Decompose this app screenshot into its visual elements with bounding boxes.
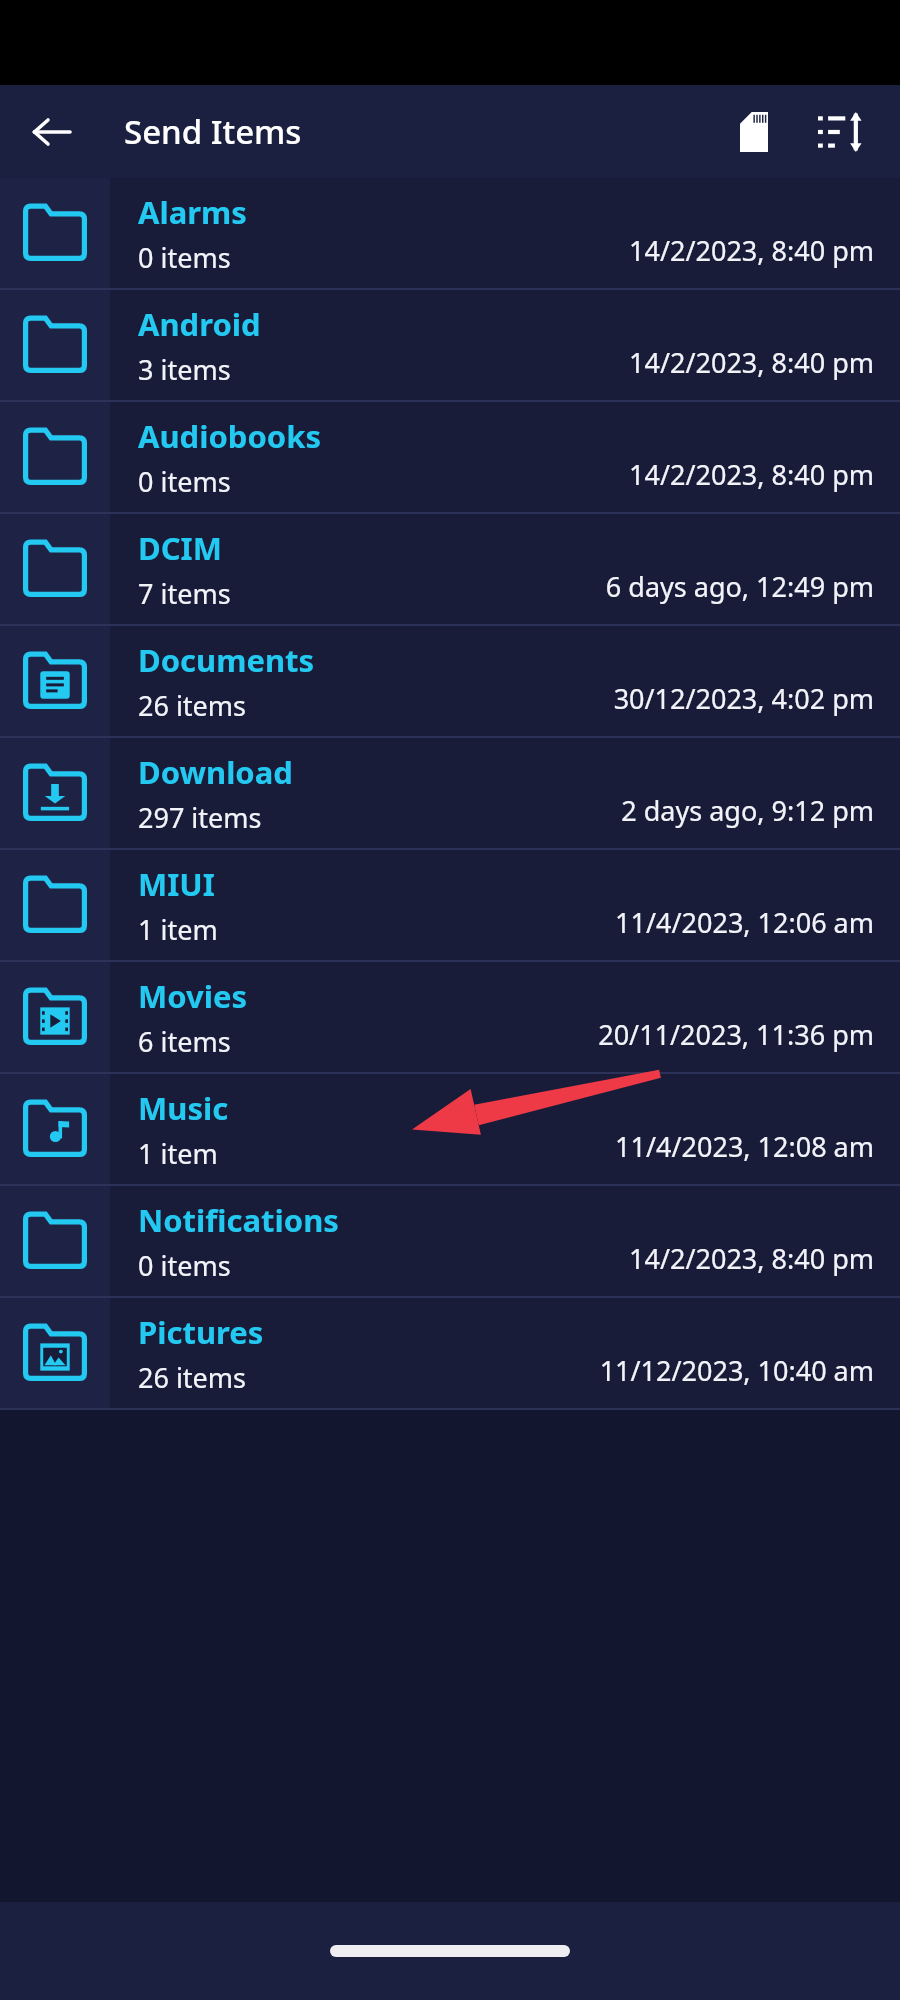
button[interactable]: Movies [0,962,900,1072]
staticText: Alarms [138,191,247,233]
staticText: Documents [138,639,315,681]
button[interactable]: Documents [0,626,900,736]
staticText: 0 items [138,239,231,276]
staticText: 7 items [138,575,231,612]
staticText: MIUI [138,863,215,905]
staticText: Notifications [138,1199,339,1241]
button[interactable]: DCIM [0,514,900,624]
button[interactable]: Android [0,290,900,400]
staticText: 14/2/2023, 8:40 pm [629,232,874,269]
staticText: Audiobooks [138,415,321,457]
staticText: 26 items [138,1359,247,1396]
button[interactable]: Music [0,1074,900,1184]
staticText: 0 items [138,463,231,500]
staticText: Download [138,751,293,793]
staticText: 3 items [138,351,231,388]
staticText: 1 item [138,911,218,948]
staticText: 6 days ago, 12:49 pm [605,568,874,605]
staticText: 2 days ago, 9:12 pm [621,792,874,829]
staticText: 0 items [138,1247,231,1284]
staticText: Movies [138,975,248,1017]
staticText: DCIM [138,527,222,569]
staticText: 14/2/2023, 8:40 pm [629,344,874,381]
staticText: Pictures [138,1311,264,1353]
button[interactable]: Audiobooks [0,402,900,512]
staticText: 11/4/2023, 12:06 am [615,904,874,941]
button[interactable]: Download [0,738,900,848]
staticText: 14/2/2023, 8:40 pm [629,1240,874,1277]
staticText: 297 items [138,799,262,836]
staticText: Send Items [124,109,302,154]
button[interactable]: MIUI [0,850,900,960]
button[interactable]: Storage [718,96,790,168]
staticText: Music [138,1087,229,1129]
staticText: 6 items [138,1023,231,1060]
staticText: 14/2/2023, 8:40 pm [629,456,874,493]
staticText: 30/12/2023, 4:02 pm [613,680,874,717]
staticText: 20/11/2023, 11:36 pm [598,1016,874,1053]
staticText: Android [138,303,261,345]
staticText: 11/12/2023, 10:40 am [599,1352,874,1389]
staticText: 11/4/2023, 12:08 am [615,1128,874,1165]
button[interactable]: Back [22,102,82,162]
button[interactable]: Alarms [0,178,900,288]
button[interactable]: Sort [804,96,876,168]
button[interactable]: Pictures [0,1298,900,1408]
staticText: 26 items [138,687,247,724]
staticText: 1 item [138,1135,218,1172]
button[interactable]: Notifications [0,1186,900,1296]
